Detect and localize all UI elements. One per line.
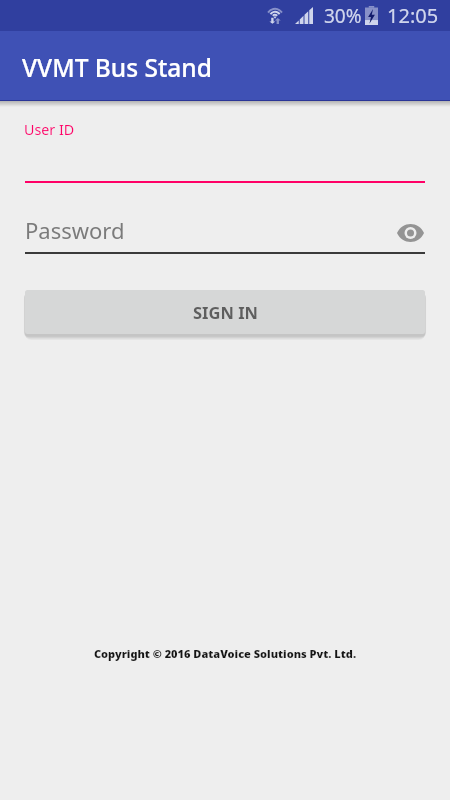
button[interactable]: User ID <box>17 110 433 186</box>
staticText: VVMT Bus Stand <box>22 51 212 84</box>
button[interactable]: Password <box>17 205 433 255</box>
button[interactable]: SIGN IN <box>25 290 425 334</box>
other: Battery charging, 30 percent <box>365 6 378 25</box>
staticText: 12:05 <box>387 2 439 29</box>
staticText: Password <box>25 215 125 245</box>
staticText: User ID <box>24 120 75 139</box>
other: Wi-Fi connected <box>266 6 284 24</box>
other: Mobile signal full <box>295 7 313 24</box>
button[interactable]: Show password <box>391 214 429 252</box>
staticText: 30% <box>324 3 362 29</box>
staticText: Copyright © 2016 DataVoice Solutions Pvt… <box>0 646 450 661</box>
staticText: SIGN IN <box>193 301 258 323</box>
